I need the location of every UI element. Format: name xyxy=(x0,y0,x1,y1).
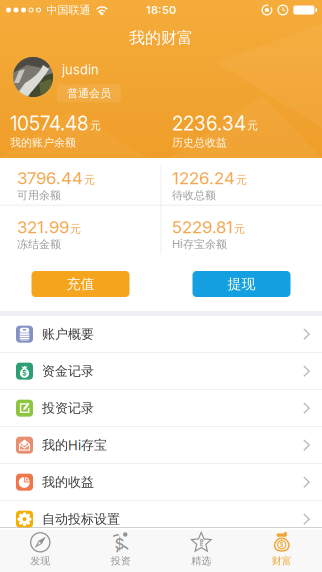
button[interactable]: 普通会员 xyxy=(57,84,121,102)
staticText: 财富 xyxy=(272,555,292,567)
staticText: jusdin xyxy=(62,62,99,77)
staticText: 精选 xyxy=(191,555,211,567)
staticText: 我的Hi存宝 xyxy=(42,437,107,453)
staticText: 元 xyxy=(70,222,81,235)
button[interactable]: 自动投标设置 xyxy=(0,501,322,538)
staticText: 自动投标设置 xyxy=(42,511,120,527)
staticText: 我的收益 xyxy=(42,474,94,490)
button[interactable]: 我的收益 xyxy=(0,464,322,501)
staticText: 中国联通 xyxy=(46,3,90,17)
staticText: 我的财富 xyxy=(129,28,193,48)
button[interactable]: 充值 xyxy=(31,271,129,297)
staticText: 历史总收益 xyxy=(172,136,227,149)
staticText: 元 xyxy=(90,119,101,132)
staticText: 账户概要 xyxy=(42,326,94,342)
staticText: 我的账户余额 xyxy=(10,136,76,149)
staticText: 充值 xyxy=(66,275,94,293)
staticText: 3796.44 xyxy=(17,168,83,188)
staticText: 普通会员 xyxy=(67,87,111,100)
button[interactable]: 精选 xyxy=(161,528,241,567)
button[interactable]: $ xyxy=(0,353,322,390)
button[interactable]: $ xyxy=(241,528,322,567)
staticText: $ xyxy=(280,541,284,548)
staticText: Hi存宝余额 xyxy=(172,238,227,251)
staticText: 元 xyxy=(236,173,247,186)
staticText: 可用余额 xyxy=(17,189,61,202)
staticText: 10574.48 xyxy=(10,112,89,135)
staticText: 元 xyxy=(84,173,95,186)
staticText: $ xyxy=(22,369,27,377)
staticText: 发现 xyxy=(30,555,50,567)
staticText: 元 xyxy=(234,222,245,235)
button[interactable]: 投资记录 xyxy=(0,390,322,427)
button[interactable]: 提现 xyxy=(192,271,290,297)
staticText: 2236.34 xyxy=(172,112,246,135)
staticText: 投资 xyxy=(111,555,131,567)
staticText: 冻结金额 xyxy=(17,238,61,251)
staticText: $ xyxy=(115,535,125,553)
staticText: 5229.81 xyxy=(172,217,233,237)
staticText: 提现 xyxy=(227,275,255,293)
staticText: 资金记录 xyxy=(42,363,94,379)
staticText: 待收总额 xyxy=(172,189,216,202)
staticText: 321.99 xyxy=(17,217,69,237)
button[interactable]: $ xyxy=(80,528,161,567)
staticText: 18:50 xyxy=(146,3,176,16)
staticText: 元 xyxy=(247,119,258,132)
button[interactable]: 发现 xyxy=(0,528,80,567)
button[interactable]: 我的Hi存宝 xyxy=(0,427,322,464)
button[interactable]: 账户概要 xyxy=(0,316,322,353)
staticText: 1226.24 xyxy=(172,168,235,188)
staticText: 投资记录 xyxy=(42,400,94,416)
